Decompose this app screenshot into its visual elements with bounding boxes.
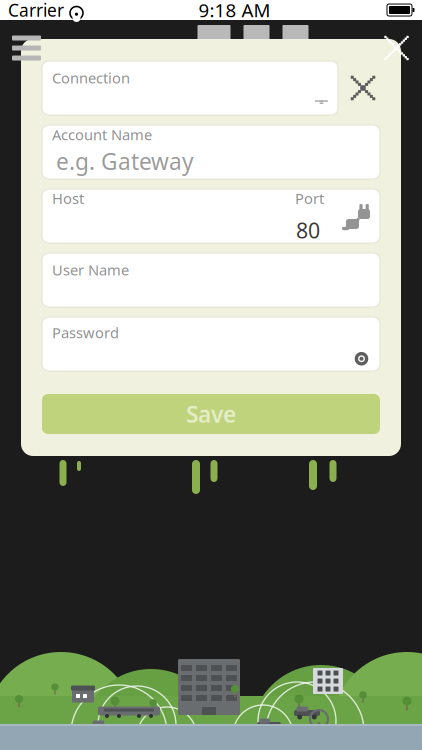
staticText: 9:18 AM: [198, 0, 270, 22]
staticText: Save: [186, 399, 236, 429]
button[interactable]: Menu: [0, 25, 53, 70]
button[interactable]: Save: [42, 394, 380, 434]
staticText: Account Name: [52, 125, 152, 144]
staticText: User Name: [52, 260, 129, 279]
button[interactable]: Account Name: [42, 125, 380, 179]
staticText: e.g. Gateway: [56, 146, 194, 176]
staticText: Host: [52, 189, 84, 208]
staticText: Connection: [52, 68, 130, 87]
staticText: 80: [296, 216, 320, 244]
button[interactable]: Close: [371, 26, 422, 69]
staticText: Carrier: [8, 0, 64, 21]
button[interactable]: User Name: [42, 253, 380, 307]
staticText: Password: [52, 323, 119, 342]
button[interactable]: Host: [42, 189, 380, 243]
staticText: Port: [295, 189, 324, 208]
button[interactable]: Connection: [42, 61, 338, 115]
button[interactable]: Password: [42, 317, 380, 371]
button[interactable]: Clear connection: [346, 61, 380, 115]
